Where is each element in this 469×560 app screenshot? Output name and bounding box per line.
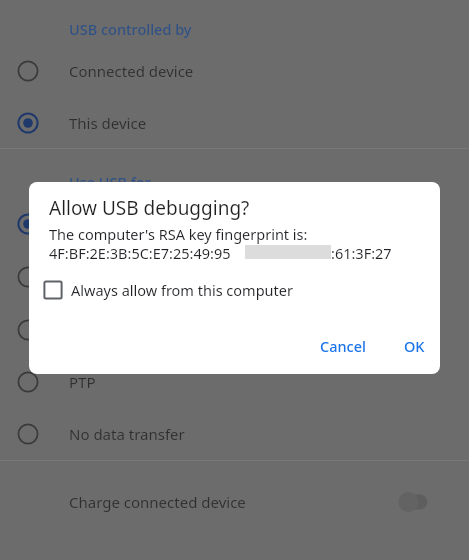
- staticText: This device: [69, 113, 147, 133]
- other: Charge connected device toggle: [397, 490, 443, 514]
- button[interactable]: Charge connected device: [0, 481, 469, 523]
- staticText: The computer's RSA key fingerprint is:: [49, 224, 308, 244]
- button[interactable]: OK: [394, 328, 434, 364]
- button[interactable]: This device: [0, 101, 469, 145]
- staticText: USB controlled by: [69, 19, 192, 39]
- button[interactable]: Connected device: [0, 49, 469, 93]
- button[interactable]: [0, 255, 469, 299]
- button[interactable]: No data transfer: [0, 412, 469, 456]
- button[interactable]: PTP: [0, 360, 469, 404]
- staticText: Allow USB debugging?: [49, 195, 250, 221]
- staticText: Always allow from this computer: [71, 280, 293, 300]
- staticText: Connected device: [69, 61, 194, 81]
- button[interactable]: [0, 308, 469, 352]
- button[interactable]: [0, 202, 469, 246]
- staticText: PTP: [69, 372, 96, 392]
- staticText: :61:3F:27: [331, 243, 392, 263]
- staticText: Use USB for: [69, 172, 151, 192]
- staticText: No data transfer: [69, 424, 185, 444]
- staticText: OK: [404, 336, 425, 356]
- button[interactable]: Cancel: [312, 328, 374, 364]
- button[interactable]: Always allow from this computer: [43, 272, 293, 308]
- staticText: 4F:BF:2E:3B:5C:E7:25:49:95: [49, 243, 231, 263]
- staticText: Cancel: [320, 336, 366, 356]
- staticText: Charge connected device: [69, 492, 246, 512]
